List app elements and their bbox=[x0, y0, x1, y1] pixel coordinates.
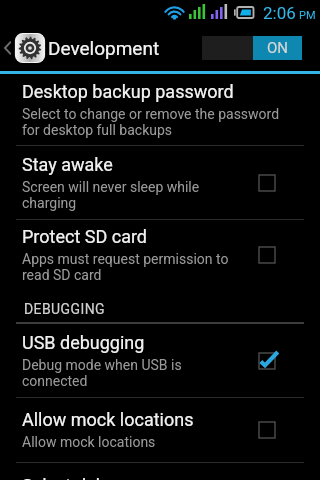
button[interactable]: Protect SD card bbox=[255, 220, 320, 290]
button[interactable]: ON bbox=[202, 36, 302, 60]
staticText: Select debug app bbox=[22, 475, 161, 480]
button[interactable]: Allow mock locations bbox=[255, 398, 320, 462]
staticText: Select to change or remove the password … bbox=[22, 106, 280, 138]
button[interactable]: USB debugging bbox=[255, 324, 320, 397]
button[interactable]: Select debug app bbox=[0, 463, 320, 480]
button[interactable]: Desktop backup password bbox=[0, 74, 320, 145]
staticText: Allow mock locations bbox=[22, 434, 156, 450]
staticText: 2:06 bbox=[263, 3, 296, 23]
button[interactable]: Allow mock locations bbox=[0, 398, 320, 462]
staticText: Stay awake bbox=[22, 154, 113, 175]
staticText: Desktop backup password bbox=[22, 81, 234, 102]
staticText: PM bbox=[299, 9, 316, 22]
staticText: Allow mock locations bbox=[22, 409, 194, 430]
button[interactable]: Navigate up bbox=[0, 29, 47, 67]
staticText: USB debugging bbox=[22, 332, 145, 353]
staticText: DEBUGGING bbox=[24, 301, 105, 317]
staticText: Apps must request permission to read SD … bbox=[22, 251, 229, 283]
staticText: Screen will never sleep while charging bbox=[22, 179, 200, 211]
button[interactable]: USB debugging bbox=[0, 324, 320, 397]
staticText: Protect SD card bbox=[22, 226, 148, 247]
staticText: Debug mode when USB is connected bbox=[22, 357, 182, 389]
staticText: Development bbox=[48, 37, 160, 59]
staticText: ON bbox=[267, 39, 289, 57]
button[interactable]: Protect SD card bbox=[0, 220, 320, 290]
button[interactable]: Stay awake bbox=[0, 146, 320, 219]
button[interactable]: Stay awake bbox=[255, 146, 320, 219]
